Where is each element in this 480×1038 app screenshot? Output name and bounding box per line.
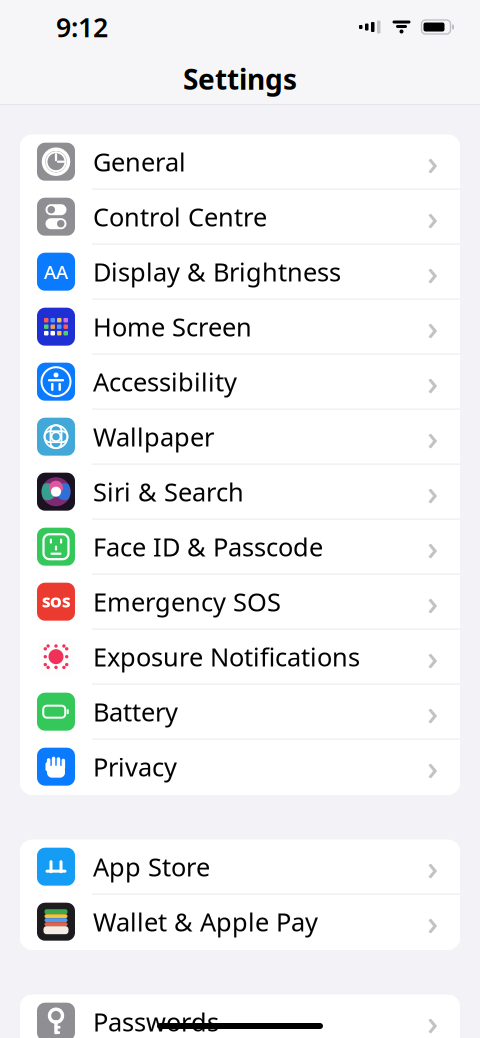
staticText: ›	[427, 359, 438, 405]
staticText: ›	[427, 414, 438, 460]
staticText: Wallet & Apple Pay	[93, 905, 318, 938]
staticText: ›	[427, 469, 438, 515]
staticText: ›	[427, 634, 438, 680]
button[interactable]: Face ID & Passcode	[20, 520, 460, 575]
staticText: ›	[427, 194, 438, 240]
button[interactable]: Privacy	[20, 740, 460, 795]
staticText: Wallpaper	[93, 420, 214, 453]
button[interactable]: Wallpaper	[20, 410, 460, 465]
staticText: ›	[427, 689, 438, 735]
staticText: ›	[427, 899, 438, 945]
staticText: ›	[427, 744, 438, 790]
staticText: 9:12	[56, 9, 108, 45]
staticText: App Store	[93, 850, 210, 883]
staticText: Exposure Notifications	[93, 640, 360, 673]
button[interactable]: Wallet & Apple Pay	[20, 895, 460, 950]
button[interactable]: Siri & Search	[20, 465, 460, 520]
button[interactable]: Home Screen	[20, 300, 460, 355]
staticText: Battery	[93, 695, 178, 728]
staticText: ›	[427, 844, 438, 890]
staticText: Display & Brightness	[93, 255, 341, 288]
button[interactable]: Battery	[20, 685, 460, 740]
staticText: SOS	[42, 592, 70, 611]
staticText: ›	[427, 304, 438, 350]
staticText: Face ID & Passcode	[93, 530, 323, 563]
staticText: Siri & Search	[93, 475, 244, 508]
staticText: Privacy	[93, 750, 177, 783]
staticText: Settings	[183, 60, 297, 98]
staticText: Passwords	[93, 1005, 219, 1038]
staticText: ›	[427, 579, 438, 625]
staticText: AA	[44, 259, 68, 284]
button[interactable]: AA	[20, 245, 460, 300]
staticText: ›	[427, 524, 438, 570]
staticText: General	[93, 145, 186, 178]
staticText: ›	[427, 999, 438, 1038]
staticText: ›	[427, 249, 438, 295]
button[interactable]: Exposure Notifications	[20, 630, 460, 685]
button[interactable]: General	[20, 135, 460, 190]
button[interactable]: Control Centre	[20, 190, 460, 245]
staticText: Accessibility	[93, 365, 237, 398]
staticText: Home Screen	[93, 310, 252, 343]
staticText: ›	[427, 139, 438, 185]
staticText: Control Centre	[93, 200, 267, 233]
button[interactable]: SOS	[20, 575, 460, 630]
button[interactable]: Passwords	[20, 995, 460, 1038]
staticText: Emergency SOS	[93, 585, 281, 618]
button[interactable]: App Store	[20, 840, 460, 895]
button[interactable]: Accessibility	[20, 355, 460, 410]
